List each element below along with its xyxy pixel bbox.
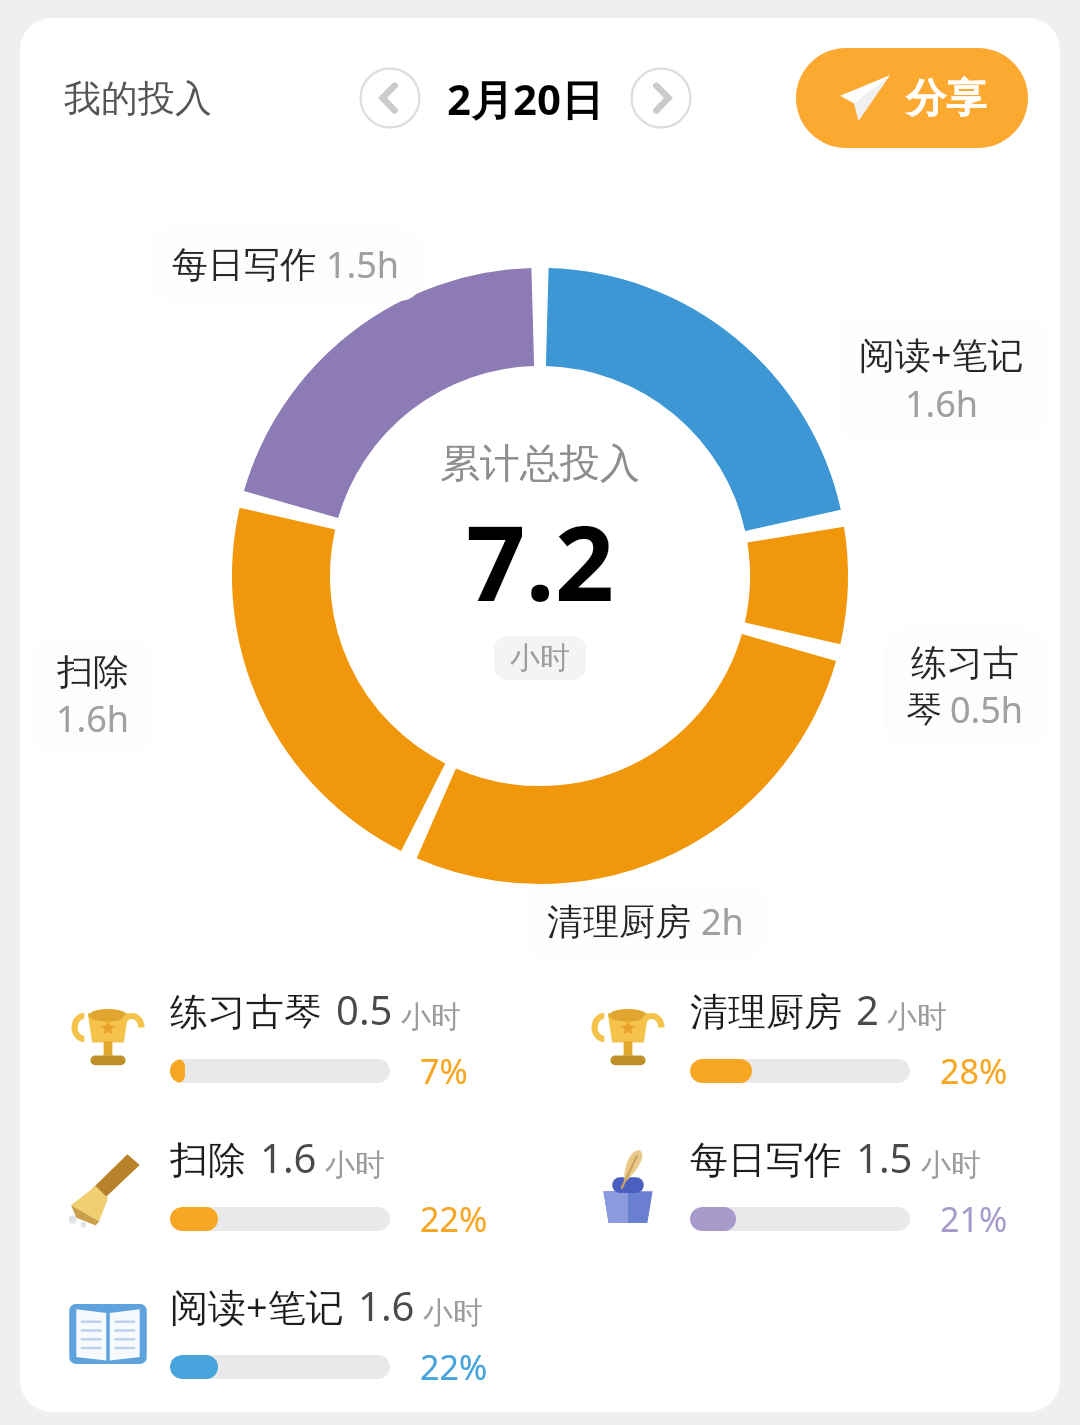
button[interactable]: 扫除 bbox=[34, 637, 152, 755]
staticText: 阅读+笔记 bbox=[859, 330, 1024, 379]
staticText: 1.6h bbox=[905, 379, 979, 428]
button[interactable]: 练习古琴 bbox=[20, 978, 540, 1098]
staticText: 练习古 bbox=[911, 640, 1019, 685]
staticText: 28% bbox=[940, 1048, 1008, 1094]
staticText: 小时 bbox=[325, 1146, 385, 1184]
staticText: 小时 bbox=[921, 1146, 981, 1184]
staticText: 累计总投入 bbox=[440, 438, 640, 488]
staticText: 分享 bbox=[906, 73, 986, 123]
staticText: 阅读+笔记 bbox=[170, 1280, 344, 1332]
staticText: 2月20日 bbox=[447, 70, 604, 127]
staticText: 2h bbox=[701, 897, 744, 946]
staticText: 练习古琴 bbox=[170, 988, 322, 1036]
staticText: 小时 bbox=[423, 1294, 483, 1332]
staticText: 每日写作 bbox=[172, 242, 316, 287]
staticText: 7% bbox=[420, 1048, 468, 1094]
staticText: 小时 bbox=[887, 998, 947, 1036]
button[interactable]: 练习古 bbox=[884, 628, 1046, 746]
staticText: 1.5h bbox=[326, 240, 400, 289]
staticText: 0.5h bbox=[950, 685, 1024, 734]
staticText: 21% bbox=[940, 1196, 1008, 1242]
staticText: 扫除 bbox=[170, 1136, 246, 1184]
staticText: 清理厨房 bbox=[690, 988, 842, 1036]
staticText: 1.5 bbox=[856, 1130, 913, 1184]
staticText: 扫除 bbox=[57, 649, 129, 694]
button[interactable]: Next day bbox=[630, 67, 692, 129]
button[interactable]: 每日写作 bbox=[150, 228, 422, 301]
staticText: 1.6 bbox=[260, 1130, 317, 1184]
button[interactable]: Previous day bbox=[359, 67, 421, 129]
staticText: 小时 bbox=[510, 639, 570, 677]
staticText: 小时 bbox=[401, 998, 461, 1036]
button[interactable]: 阅读+笔记 bbox=[837, 318, 1046, 440]
staticText: 22% bbox=[420, 1344, 488, 1390]
staticText: 1.6 bbox=[358, 1278, 415, 1332]
button[interactable]: 阅读+笔记 bbox=[20, 1274, 540, 1394]
staticText: 琴 bbox=[906, 687, 942, 732]
button[interactable]: 扫除 bbox=[20, 1126, 540, 1246]
staticText: 0.5 bbox=[336, 982, 393, 1036]
button[interactable]: 清理厨房 bbox=[540, 978, 1060, 1098]
staticText: 清理厨房 bbox=[547, 899, 691, 944]
button[interactable]: 分享 bbox=[796, 48, 1028, 148]
staticText: 1.6h bbox=[56, 694, 130, 743]
staticText: 7.2 bbox=[466, 490, 615, 632]
button[interactable]: 每日写作 bbox=[540, 1126, 1060, 1246]
staticText: 每日写作 bbox=[690, 1136, 842, 1184]
button[interactable]: 清理厨房 bbox=[525, 885, 766, 958]
staticText: 22% bbox=[420, 1196, 488, 1242]
staticText: 我的投入 bbox=[64, 75, 212, 122]
staticText: 2 bbox=[856, 982, 879, 1036]
